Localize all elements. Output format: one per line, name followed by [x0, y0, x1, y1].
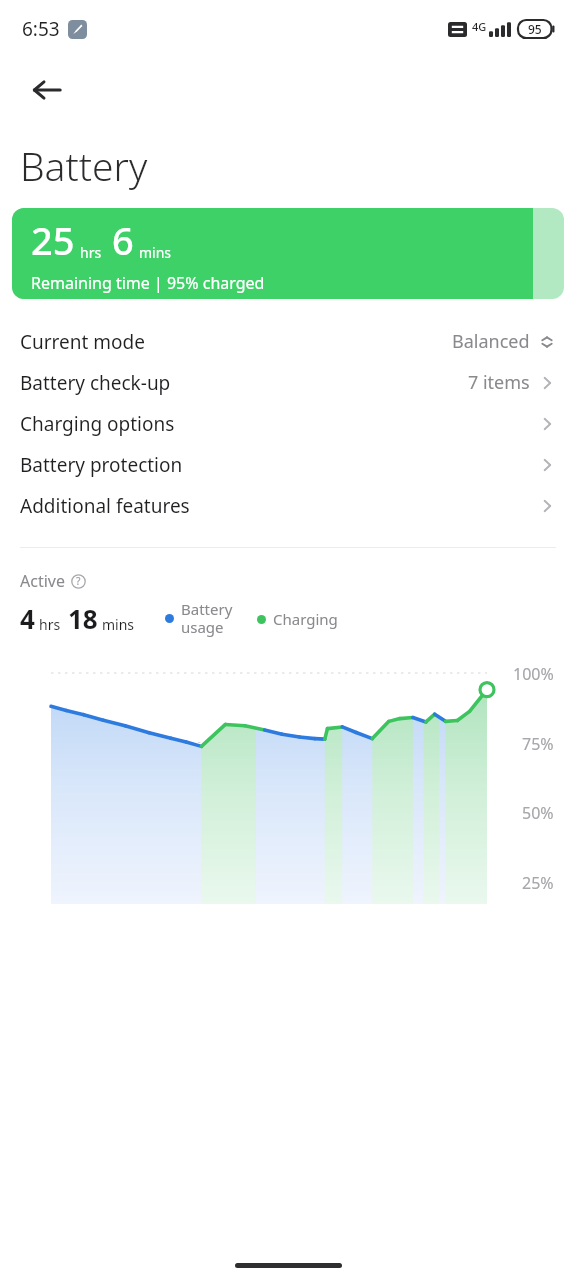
staticText: Battery	[20, 139, 148, 192]
staticText: Current mode	[20, 329, 145, 355]
staticText: Balanced	[452, 329, 530, 354]
staticText: 6	[112, 214, 134, 266]
staticText: 4	[20, 601, 35, 636]
staticText: 4G	[472, 19, 487, 34]
staticText: Additional features	[20, 493, 190, 519]
button[interactable]: Battery protection	[0, 444, 576, 485]
button[interactable]: Back	[24, 67, 70, 113]
staticText: hrs	[39, 615, 61, 634]
staticText: mins	[102, 615, 135, 634]
staticText: 7 items	[468, 370, 530, 395]
staticText: 95	[528, 21, 542, 37]
button[interactable]: Current mode	[0, 321, 576, 362]
button[interactable]: 25	[12, 208, 564, 299]
staticText: 75%	[522, 733, 554, 755]
staticText: 100%	[513, 663, 554, 685]
staticText: Battery protection	[20, 452, 183, 478]
staticText: 25	[31, 214, 75, 266]
button[interactable]: Battery check-up	[0, 362, 576, 403]
button[interactable]: Additional features	[0, 485, 576, 526]
staticText: Battery usage	[181, 599, 233, 638]
staticText: mins	[139, 243, 172, 262]
staticText: 50%	[522, 802, 554, 824]
staticText: Charging	[273, 609, 338, 629]
staticText: 6:53	[22, 16, 60, 42]
button[interactable]: Charging options	[0, 403, 576, 444]
staticText: hrs	[80, 243, 102, 262]
staticText: Remaining time | 95% charged	[31, 272, 265, 294]
staticText: 25%	[522, 872, 554, 894]
staticText: Charging options	[20, 411, 175, 437]
staticText: 18	[68, 601, 98, 636]
staticText: Battery check-up	[20, 370, 171, 396]
staticText: ?	[76, 574, 81, 588]
staticText: Active	[20, 570, 65, 592]
button[interactable]: About active time	[70, 573, 86, 589]
